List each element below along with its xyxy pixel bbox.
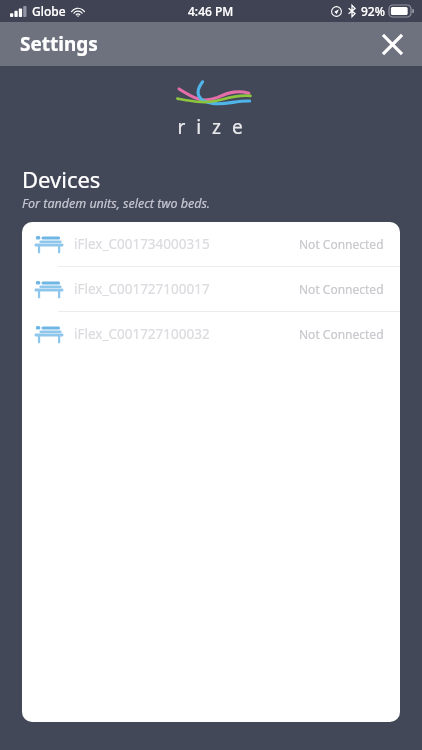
staticText: iFlex_C001727100017	[74, 280, 210, 298]
staticText: iFlex_C001727100032	[74, 325, 210, 343]
button[interactable]: iFlex_C001727100032	[22, 312, 400, 356]
staticText: r i z e	[177, 114, 246, 140]
staticText: Settings	[20, 31, 98, 57]
staticText: Globe	[32, 3, 66, 19]
button[interactable]: iFlex_C001734000315	[22, 222, 400, 266]
staticText: iFlex_C001734000315	[74, 235, 210, 253]
staticText: Not Connected	[299, 236, 384, 252]
button[interactable]: Close	[372, 24, 412, 64]
staticText: 4:46 PM	[188, 3, 234, 19]
staticText: Not Connected	[299, 281, 384, 297]
staticText: 92%	[361, 3, 385, 19]
staticText: Devices	[22, 164, 101, 194]
staticText: Not Connected	[299, 326, 384, 342]
button[interactable]: iFlex_C001727100017	[22, 267, 400, 311]
staticText: For tandem units, select two beds.	[22, 195, 211, 212]
